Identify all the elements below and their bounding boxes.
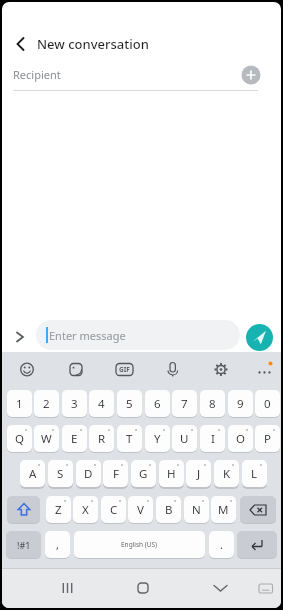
staticText: ,: [56, 537, 59, 552]
staticText: Y: [154, 431, 161, 447]
staticText: 4: [98, 396, 105, 412]
staticText: M: [218, 502, 229, 518]
staticText: Z: [55, 502, 62, 518]
staticText: B: [165, 502, 173, 518]
staticText: H: [167, 466, 176, 482]
staticText: 2: [43, 396, 50, 412]
staticText: S: [57, 466, 64, 482]
staticText: F: [113, 466, 119, 482]
staticText: A: [29, 466, 37, 482]
staticText: 3: [71, 396, 78, 412]
staticText: Recipient: [13, 67, 61, 82]
staticText: P: [264, 431, 271, 447]
staticText: U: [180, 431, 189, 447]
staticText: X: [82, 502, 89, 518]
staticText: V: [137, 502, 144, 518]
staticText: .: [220, 537, 223, 552]
staticText: 5: [126, 396, 133, 412]
staticText: C: [110, 502, 118, 518]
staticText: GIF: [119, 365, 130, 374]
staticText: D: [84, 466, 93, 482]
staticText: 7: [181, 396, 188, 412]
staticText: O: [236, 431, 245, 447]
staticText: !#1: [17, 539, 31, 551]
staticText: K: [223, 466, 231, 482]
staticText: E: [71, 431, 78, 447]
staticText: N: [192, 502, 201, 518]
staticText: Q: [15, 431, 24, 447]
staticText: New conversation: [37, 35, 149, 53]
staticText: I: [211, 431, 215, 447]
staticText: English (US): [121, 540, 158, 549]
staticText: 9: [237, 396, 244, 412]
staticText: 6: [154, 396, 161, 412]
staticText: L: [251, 466, 258, 482]
staticText: T: [126, 431, 133, 447]
staticText: 0: [264, 396, 271, 412]
staticText: W: [41, 431, 52, 447]
staticText: J: [197, 466, 201, 482]
staticText: 1: [16, 396, 23, 412]
staticText: G: [139, 466, 148, 482]
staticText: R: [98, 431, 106, 447]
staticText: 8: [209, 396, 216, 412]
staticText: Enter message: [49, 328, 126, 343]
